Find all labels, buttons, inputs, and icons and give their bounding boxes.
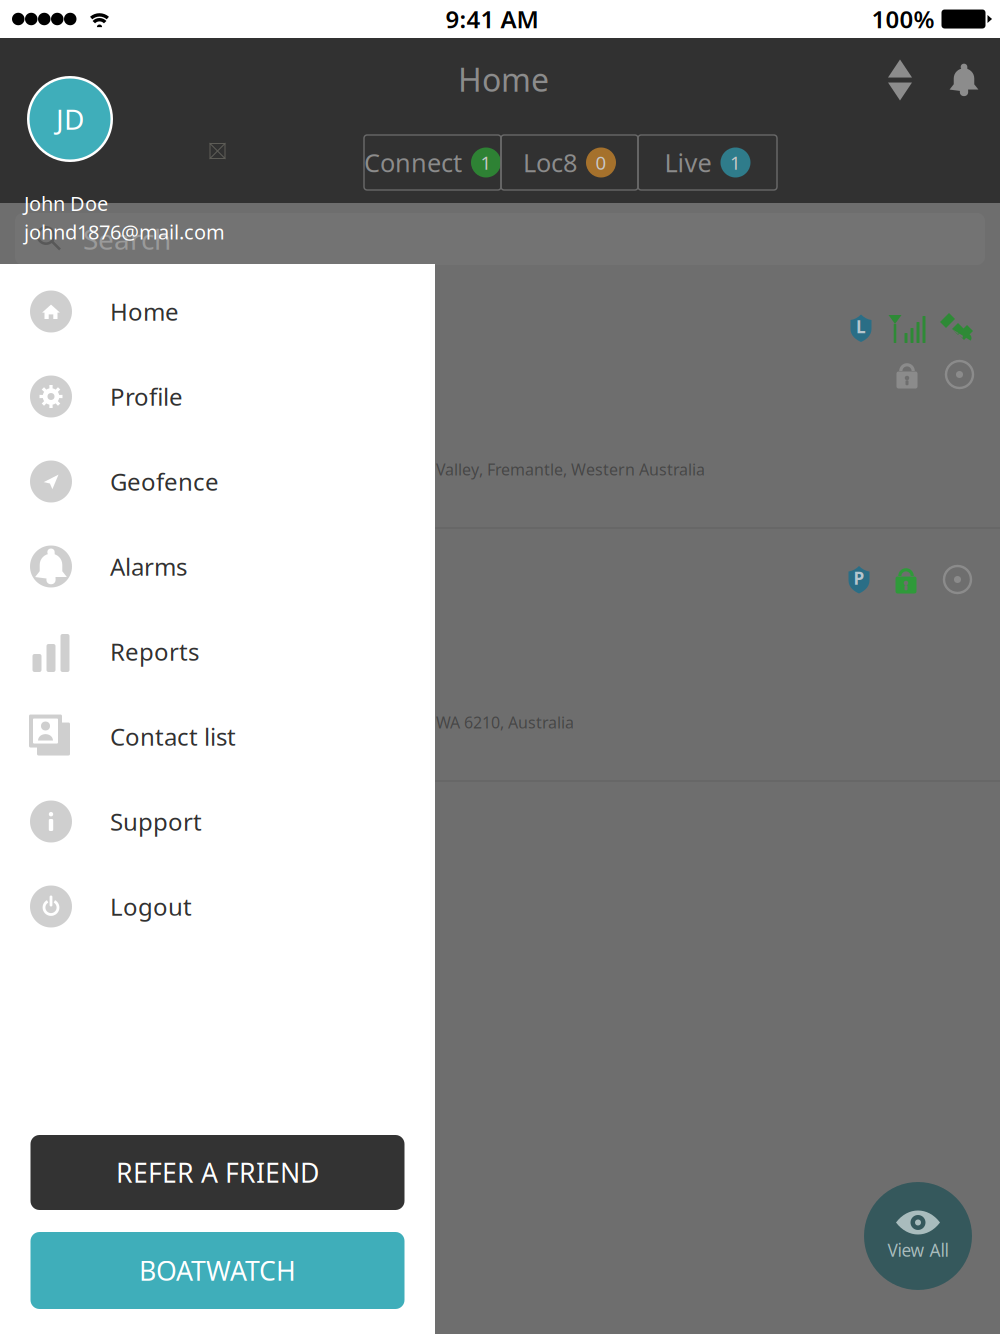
staticText: Connect [364,146,462,179]
staticText: 1 [480,150,491,175]
staticText: Live [664,146,711,179]
staticText: 9:41 AM [445,3,538,35]
button[interactable]: Geofence [0,439,435,524]
button[interactable]: P [0,529,1000,782]
button[interactable]: Alarms [0,524,435,609]
staticText: 100% [871,3,934,35]
button[interactable]: Loc8 [501,135,638,190]
staticText: 0 [595,150,606,175]
button[interactable]: Connect [364,135,501,190]
button[interactable]: Reports [0,609,435,694]
staticText: JD [56,100,84,138]
staticText: P [853,566,864,589]
image [209,143,225,159]
staticText: Home [110,296,179,327]
staticText: Home [458,58,549,100]
staticText: Loc8 [523,146,577,179]
button[interactable]: Logout [0,864,435,949]
staticText: johnd1876@mail.com [24,218,225,245]
staticText: REFER A FRIEND [116,1155,319,1190]
staticText: Contact list [110,721,236,752]
staticText: Reports [110,636,199,667]
button[interactable]: Support [0,779,435,864]
button[interactable]: REFER A FRIEND [30,1135,404,1210]
staticText: John Doe [24,190,108,216]
staticText: Geofence [110,466,219,497]
staticText: WA 6210, Australia [436,712,574,733]
button[interactable]: Sort [880,54,920,106]
button[interactable]: Live [638,135,777,190]
button[interactable]: View All [864,1182,972,1290]
staticText: Logout [110,891,192,922]
staticText: View All [887,1238,948,1261]
staticText: Support [110,806,202,837]
staticText: Search [83,220,171,258]
button[interactable]: Profile [0,354,435,439]
staticText: Valley, Fremantle, Western Australia [436,459,705,480]
button[interactable]: L [0,276,1000,529]
staticText: Profile [110,381,183,412]
button[interactable]: Search [15,213,985,265]
button[interactable]: Home [0,269,435,354]
button[interactable]: Notifications [940,54,988,106]
staticText: L [856,315,866,338]
button[interactable]: Contact list [0,694,435,779]
staticText: BOATWATCH [139,1253,296,1288]
staticText: Alarms [110,551,187,582]
staticText: 1 [730,150,741,175]
button[interactable]: BOATWATCH [30,1232,404,1309]
